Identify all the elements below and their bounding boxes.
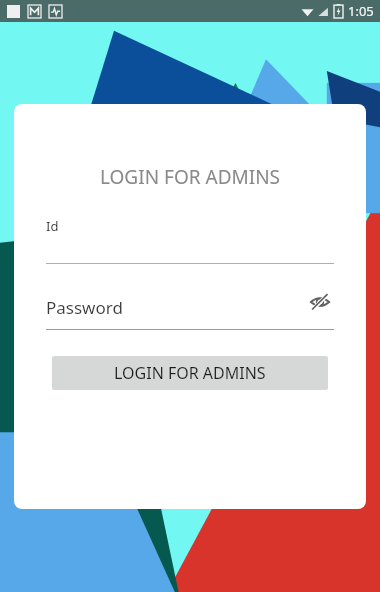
staticText: Password <box>46 296 123 319</box>
staticText: LOGIN FOR ADMINS <box>14 164 366 190</box>
button[interactable]: Password <box>46 296 334 330</box>
button[interactable]: LOGIN FOR ADMINS <box>52 356 328 390</box>
button[interactable]: Id <box>46 217 334 264</box>
staticText: Id <box>46 217 59 235</box>
button[interactable]: Show password <box>306 288 334 316</box>
staticText: 1:05 <box>348 2 374 20</box>
staticText: LOGIN FOR ADMINS <box>114 362 266 384</box>
